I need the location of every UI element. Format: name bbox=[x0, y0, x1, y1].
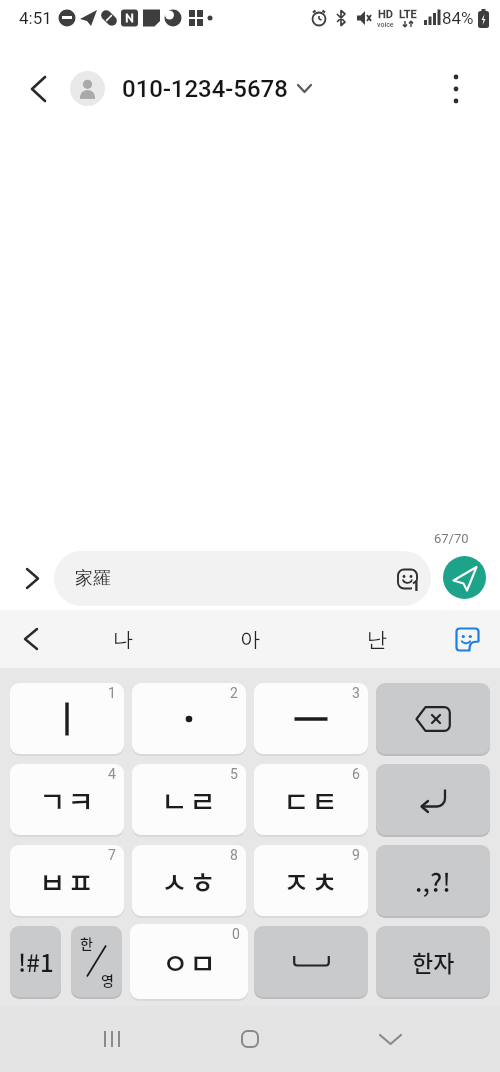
button[interactable] bbox=[452, 624, 482, 654]
staticText: 67/70 bbox=[434, 531, 469, 546]
button[interactable]: 난 bbox=[313, 610, 440, 668]
button[interactable]: !#1 bbox=[10, 926, 61, 997]
staticText: 8 bbox=[230, 847, 238, 863]
button[interactable]: 1 bbox=[10, 683, 124, 754]
staticText: ㅇㅁ bbox=[162, 941, 217, 983]
button[interactable] bbox=[16, 624, 46, 654]
button[interactable]: ㄱㅋ bbox=[10, 764, 124, 835]
staticText: LTE bbox=[399, 8, 417, 21]
button[interactable]: ㄷㅌ bbox=[254, 764, 368, 835]
staticText: ㅈㅊ bbox=[283, 860, 340, 902]
staticText: 家羅 bbox=[75, 567, 111, 590]
staticText: 7 bbox=[108, 847, 116, 863]
button[interactable]: 한자 bbox=[376, 926, 490, 997]
staticText: ㅂㅍ bbox=[39, 860, 96, 902]
staticText: voice bbox=[377, 21, 394, 29]
staticText: 아 bbox=[240, 627, 260, 652]
button[interactable]: 2 bbox=[132, 683, 246, 754]
staticText: 6 bbox=[352, 766, 360, 782]
staticText: 영 bbox=[101, 970, 114, 990]
staticText: .,?! bbox=[415, 863, 451, 899]
button[interactable]: ㅇㅁ bbox=[130, 924, 248, 999]
staticText: 010-1234-5678 bbox=[122, 75, 288, 103]
button[interactable]: 아 bbox=[186, 610, 313, 668]
staticText: ㄱㅋ bbox=[39, 779, 96, 821]
staticText: 난 bbox=[367, 627, 387, 652]
staticText: 2 bbox=[230, 685, 238, 701]
staticText: 3 bbox=[352, 685, 360, 701]
staticText: 한자 bbox=[412, 945, 455, 978]
staticText: 나 bbox=[113, 627, 133, 652]
button[interactable] bbox=[376, 683, 490, 754]
staticText: ㅅㅎ bbox=[161, 860, 218, 902]
staticText: 0 bbox=[232, 926, 240, 942]
button[interactable] bbox=[443, 556, 486, 599]
button[interactable]: ㅂㅍ bbox=[10, 845, 124, 916]
staticText: 84% bbox=[442, 8, 474, 28]
button[interactable] bbox=[18, 564, 46, 592]
button[interactable]: 나 bbox=[60, 610, 186, 668]
button[interactable]: 3 bbox=[254, 683, 368, 754]
staticText: ㄴㄹ bbox=[161, 779, 218, 821]
button[interactable] bbox=[16, 67, 60, 111]
staticText: 9 bbox=[352, 847, 360, 863]
button[interactable]: 家羅 bbox=[54, 551, 431, 606]
button[interactable] bbox=[376, 764, 490, 835]
button[interactable]: ㅈㅊ bbox=[254, 845, 368, 916]
staticText: 5 bbox=[230, 766, 238, 782]
button[interactable] bbox=[230, 1019, 270, 1059]
button[interactable] bbox=[254, 926, 368, 997]
staticText: 한 bbox=[80, 933, 93, 953]
staticText: ㄷㅌ bbox=[283, 779, 340, 821]
staticText: 4 bbox=[108, 766, 116, 782]
button[interactable]: ㄴㄹ bbox=[132, 764, 246, 835]
button[interactable]: 010-1234-5678 bbox=[70, 71, 311, 106]
button[interactable]: ㅅㅎ bbox=[132, 845, 246, 916]
staticText: !#1 bbox=[18, 944, 54, 979]
button[interactable]: .,?! bbox=[376, 845, 490, 916]
button[interactable] bbox=[438, 71, 474, 107]
button[interactable] bbox=[92, 1019, 132, 1059]
button[interactable] bbox=[370, 1019, 410, 1059]
staticText: 1 bbox=[108, 685, 116, 701]
button[interactable]: 한 bbox=[71, 926, 122, 997]
staticText: HD bbox=[378, 8, 394, 21]
staticText: 4:51 bbox=[19, 8, 52, 28]
